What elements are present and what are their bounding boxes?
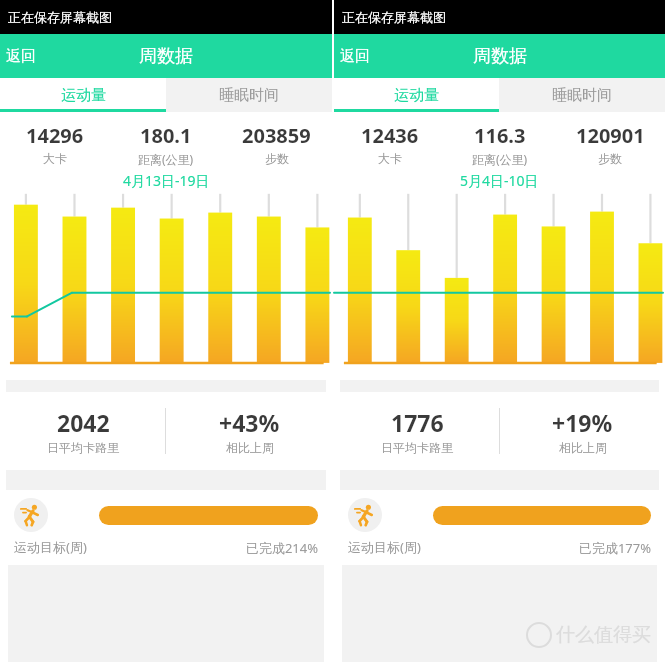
staticText: 步数 <box>598 151 622 166</box>
staticText: 睡眠时间 <box>219 86 279 105</box>
button[interactable]: 运动量 <box>334 78 499 112</box>
staticText: 5月4日-10日 <box>460 171 539 190</box>
staticText: 120901 <box>576 122 645 149</box>
staticText: 相比上周 <box>559 440 607 455</box>
staticText: 距离(公里) <box>472 151 528 167</box>
button[interactable]: 睡眠时间 <box>499 78 665 112</box>
staticText: 12436 <box>361 122 419 149</box>
button[interactable]: Exercise goal <box>14 490 318 562</box>
staticText: 14296 <box>26 122 84 149</box>
staticText: 周数据 <box>473 45 527 68</box>
staticText: 1776 <box>391 407 444 438</box>
staticText: 大卡 <box>378 151 402 166</box>
staticText: 运动量 <box>394 86 439 105</box>
staticText: 周数据 <box>139 45 193 68</box>
button[interactable]: 返回 <box>0 39 42 74</box>
staticText: 返回 <box>6 47 36 66</box>
staticText: 正在保存屏幕截图 <box>8 9 112 25</box>
staticText: 睡眠时间 <box>552 86 612 105</box>
staticText: 运动量 <box>61 86 106 105</box>
staticText: 180.1 <box>140 122 192 149</box>
staticText: 距离(公里) <box>138 151 194 167</box>
staticText: 日平均卡路里 <box>47 440 119 455</box>
staticText: 步数 <box>265 151 289 166</box>
staticText: +19% <box>552 407 613 438</box>
staticText: 运动目标(周) <box>14 538 87 556</box>
staticText: 已完成214% <box>99 539 318 557</box>
button[interactable]: 睡眠时间 <box>166 78 332 112</box>
staticText: 2042 <box>57 407 110 438</box>
staticText: 运动目标(周) <box>348 538 421 556</box>
staticText: 什么值得买 <box>556 623 651 647</box>
staticText: +43% <box>219 407 280 438</box>
button[interactable]: 运动量 <box>0 78 166 112</box>
staticText: 大卡 <box>43 151 67 166</box>
staticText: 203859 <box>242 122 311 149</box>
staticText: 相比上周 <box>226 440 274 455</box>
other: Exercise goal <box>348 498 382 532</box>
staticText: 日平均卡路里 <box>381 440 453 455</box>
staticText: 已完成177% <box>433 539 651 557</box>
button[interactable]: 返回 <box>334 39 376 74</box>
staticText: 116.3 <box>474 122 526 149</box>
other: Exercise goal <box>14 498 48 532</box>
staticText: 4月13日-19日 <box>123 171 210 190</box>
staticText: 正在保存屏幕截图 <box>342 9 446 25</box>
button[interactable]: Exercise goal <box>348 490 651 562</box>
staticText: 返回 <box>340 47 370 66</box>
